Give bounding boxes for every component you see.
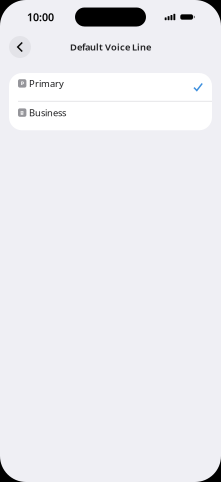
button[interactable]: Back bbox=[9, 36, 31, 58]
staticText: Primary bbox=[29, 77, 64, 90]
staticText: B bbox=[20, 109, 24, 116]
staticText: Default Voice Line bbox=[70, 41, 151, 53]
button[interactable]: P bbox=[9, 73, 212, 101]
staticText: P bbox=[21, 80, 24, 87]
staticText: 10:00 bbox=[27, 10, 54, 24]
staticText: Business bbox=[29, 106, 66, 119]
button[interactable]: B bbox=[9, 102, 212, 130]
